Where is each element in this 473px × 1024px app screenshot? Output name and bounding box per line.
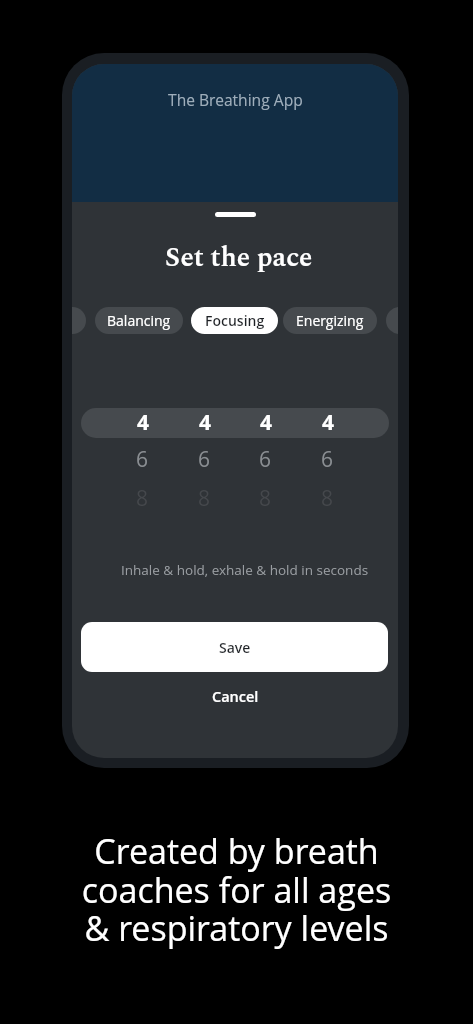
button[interactable]: 8 bbox=[112, 483, 173, 513]
staticText: 6 bbox=[259, 445, 272, 474]
staticText: 6 bbox=[136, 445, 149, 474]
button[interactable]: Energizing bbox=[283, 307, 377, 334]
button[interactable]: 6 bbox=[235, 444, 296, 474]
button[interactable]: Cancel bbox=[170, 678, 300, 716]
staticText: Inhale & hold, exhale & hold in seconds bbox=[121, 561, 369, 579]
staticText: Set the pace bbox=[165, 237, 313, 278]
button[interactable]: Drag handle bbox=[205, 206, 265, 222]
staticText: 4 bbox=[322, 408, 334, 437]
button[interactable]: 8 bbox=[297, 483, 358, 513]
staticText: Save bbox=[219, 638, 251, 657]
button[interactable]: 6 bbox=[174, 444, 235, 474]
button[interactable]: Calming preset bbox=[72, 307, 86, 334]
staticText: The Breathing App bbox=[168, 89, 303, 110]
button[interactable]: 4 bbox=[112, 407, 173, 437]
staticText: Balancing bbox=[107, 311, 171, 330]
staticText: 8 bbox=[136, 484, 149, 513]
staticText: 8 bbox=[259, 484, 272, 513]
staticText: Cancel bbox=[212, 687, 259, 707]
staticText: 8 bbox=[321, 484, 334, 513]
staticText: 8 bbox=[198, 484, 211, 513]
button[interactable]: Balancing bbox=[95, 307, 183, 334]
staticText: Focusing bbox=[205, 311, 265, 330]
button[interactable]: 4 bbox=[235, 407, 296, 437]
button[interactable]: Focusing bbox=[191, 307, 278, 334]
staticText: 6 bbox=[321, 445, 334, 474]
staticText: Created by breath coaches for all ages &… bbox=[0, 828, 473, 951]
button[interactable]: 6 bbox=[297, 444, 358, 474]
button[interactable]: More presets bbox=[386, 307, 398, 334]
button[interactable]: 4 bbox=[297, 407, 358, 437]
staticText: 4 bbox=[260, 408, 272, 437]
staticText: 4 bbox=[137, 408, 149, 437]
button[interactable]: 4 bbox=[174, 407, 235, 437]
staticText: Energizing bbox=[296, 311, 364, 330]
button[interactable]: 6 bbox=[112, 444, 173, 474]
button[interactable]: 8 bbox=[174, 483, 235, 513]
button[interactable]: 8 bbox=[235, 483, 296, 513]
button[interactable]: Save bbox=[81, 622, 388, 672]
staticText: 6 bbox=[198, 445, 211, 474]
staticText: 4 bbox=[199, 408, 211, 437]
